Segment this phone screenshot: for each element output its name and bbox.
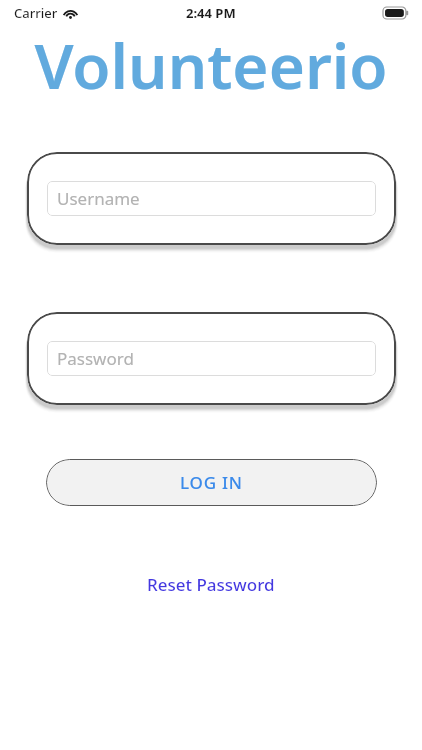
staticText: Volunteerio: [34, 23, 388, 107]
button[interactable]: Reset Password: [0, 568, 422, 600]
staticText: Username: [57, 187, 140, 210]
other: Wi-Fi signal: [63, 8, 78, 19]
button[interactable]: LOG IN: [46, 459, 377, 506]
other: Battery full: [383, 7, 409, 19]
button[interactable]: Password: [27, 312, 396, 405]
staticText: 2:44 PM: [186, 4, 236, 22]
staticText: Carrier: [14, 4, 58, 22]
staticText: LOG IN: [180, 471, 243, 494]
staticText: Reset Password: [147, 573, 275, 596]
button[interactable]: Username: [27, 152, 396, 245]
staticText: Password: [57, 347, 134, 370]
